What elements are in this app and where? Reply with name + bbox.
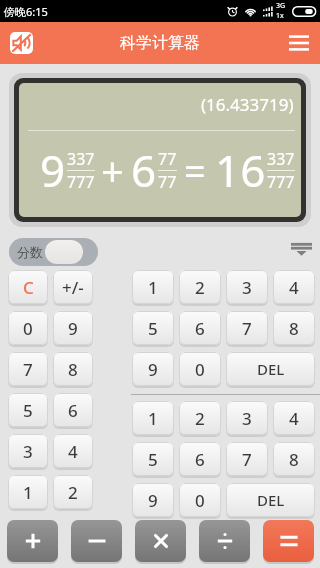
staticText: 9 [148,489,158,512]
staticText: 9 [68,317,78,340]
staticText: 1 [148,276,158,299]
button[interactable]: 5 [132,311,174,345]
staticText: 3G [276,1,286,11]
staticText: 2 [68,481,78,504]
button[interactable]: 1 [132,270,174,304]
staticText: +/- [62,276,84,299]
staticText: 4 [289,407,299,430]
button[interactable]: 4 [273,401,315,435]
staticText: 3 [242,276,252,299]
staticText: (16.433719) [201,93,294,116]
button[interactable]: DEL [226,352,315,386]
staticText: 6 [195,317,205,340]
button[interactable]: 7 [8,352,48,386]
staticText: 6 [195,448,205,471]
staticText: DEL [257,490,285,510]
staticText: 4 [289,276,299,299]
button[interactable]: 2 [179,401,221,435]
staticText: + [101,143,124,197]
button[interactable]: Mute [10,32,33,54]
button[interactable]: 9 [53,311,93,345]
staticText: 777 [67,171,95,193]
button[interactable]: 5 [8,393,48,427]
button[interactable]: C [8,270,48,304]
staticText: 0 [23,317,33,340]
button[interactable]: Plus [7,520,58,562]
staticText: 2 [195,407,205,430]
button[interactable]: 7 [226,311,268,345]
button[interactable]: 3 [8,434,48,468]
button[interactable]: 0 [179,352,221,386]
staticText: 9 [40,140,66,200]
staticText: 5 [148,317,158,340]
staticText: 3 [242,407,252,430]
staticText: 77 [158,171,177,193]
button[interactable]: 9 [132,483,174,517]
button[interactable]: 0 [179,483,221,517]
staticText: 9 [148,358,158,381]
staticText: DEL [257,359,285,379]
button[interactable]: 6 [179,311,221,345]
staticText: 科学计算器 [120,33,200,53]
staticText: 8 [68,358,78,381]
staticText: 7 [242,448,252,471]
button[interactable]: Collapse keypad [291,241,312,256]
button[interactable]: Equals [263,520,314,562]
staticText: 6 [131,140,157,200]
staticText: 1 [23,481,33,504]
button[interactable]: +/- [53,270,93,304]
staticText: 5 [148,448,158,471]
staticText: 77 [158,148,177,170]
staticText: 傍晚6:15 [4,4,48,19]
staticText: C [23,276,34,299]
button[interactable]: DEL [226,483,315,517]
staticText: 1 [148,407,158,430]
staticText: 0 [195,358,205,381]
button[interactable]: 分数 [9,238,98,266]
button[interactable]: 3 [226,401,268,435]
button[interactable]: Minus [71,520,122,562]
staticText: 7 [242,317,252,340]
staticText: 337 [67,148,95,170]
button[interactable]: 6 [53,393,93,427]
staticText: 4 [68,440,78,463]
staticText: 分数 [17,244,43,260]
staticText: 0 [195,489,205,512]
staticText: 5 [23,399,33,422]
button[interactable]: 5 [132,442,174,476]
button[interactable]: Menu [289,35,309,51]
button[interactable]: 3 [226,270,268,304]
staticText: 7 [23,358,33,381]
button[interactable]: 2 [53,475,93,509]
button[interactable]: 8 [273,311,315,345]
button[interactable]: Divide [199,520,250,562]
button[interactable]: 4 [53,434,93,468]
button[interactable]: Multiply [135,520,186,562]
button[interactable]: 9 [132,352,174,386]
staticText: 1x [276,11,284,21]
staticText: 777 [267,171,295,193]
button[interactable]: 8 [53,352,93,386]
button[interactable]: 8 [273,442,315,476]
button[interactable]: 6 [179,442,221,476]
staticText: 16 [215,140,266,200]
button[interactable]: 1 [8,475,48,509]
staticText: = [184,144,206,196]
staticText: 2 [195,276,205,299]
button[interactable]: 0 [8,311,48,345]
staticText: 337 [267,148,295,170]
staticText: 8 [289,448,299,471]
button[interactable]: 7 [226,442,268,476]
staticText: 8 [289,317,299,340]
button[interactable]: 4 [273,270,315,304]
button[interactable]: 1 [132,401,174,435]
button[interactable]: 2 [179,270,221,304]
staticText: 6 [68,399,78,422]
staticText: 3 [23,440,33,463]
